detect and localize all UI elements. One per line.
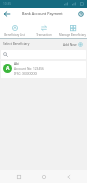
staticText: Bank Account Payment <box>22 11 63 16</box>
button[interactable]: Recents <box>12 170 25 183</box>
staticText: IFSC: XXXXXXXX <box>14 72 38 76</box>
staticText: Select Beneficiary <box>3 42 30 46</box>
staticText: Transaction <box>36 33 52 37</box>
button[interactable]: A <box>1 61 86 78</box>
staticText: Manage Beneficiary <box>59 33 86 37</box>
staticText: A <box>6 65 10 72</box>
button[interactable]: Back <box>62 170 75 183</box>
other: Search <box>3 52 8 57</box>
staticText: Beneficiary List <box>4 33 25 37</box>
staticText: Abi <box>14 62 19 66</box>
button[interactable]: Add New <box>62 42 84 47</box>
button[interactable]: Beneficiary List <box>0 19 29 38</box>
button[interactable]: Back <box>0 8 13 19</box>
button[interactable]: Home <box>37 170 50 183</box>
staticText: Account No: 123456 <box>14 67 44 71</box>
button[interactable]: Transaction <box>29 19 58 38</box>
staticText: 10:35 <box>3 2 12 6</box>
staticText: Add New <box>63 43 77 47</box>
button[interactable]: Manage Beneficiary <box>58 19 87 38</box>
button[interactable]: Transaction history <box>75 8 87 19</box>
button[interactable]: Search <box>1 50 86 59</box>
